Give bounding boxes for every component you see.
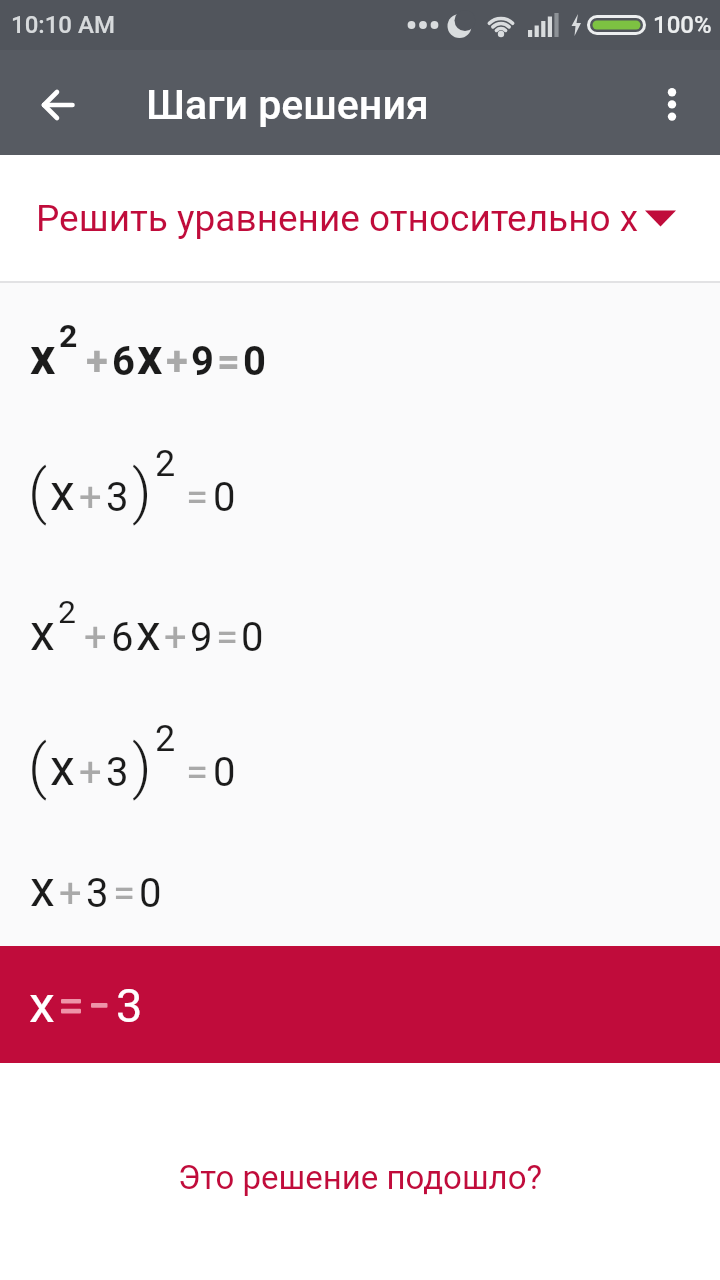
staticText: x [30, 604, 55, 663]
staticText: = [113, 870, 135, 917]
staticText: = [186, 474, 208, 521]
staticText: + [59, 870, 82, 917]
staticText: 9 [191, 338, 214, 385]
staticText: 3 [106, 474, 129, 521]
button[interactable]: Это решение подошло? [170, 1154, 551, 1201]
button[interactable]: x [30, 328, 266, 387]
staticText: + [79, 474, 102, 521]
staticText: x [137, 328, 163, 387]
staticText: 0 [241, 614, 264, 661]
staticText: 3 [116, 978, 143, 1033]
staticText: + [86, 338, 108, 385]
staticText: x [136, 604, 161, 663]
staticText: 0 [139, 870, 162, 917]
staticText: 10:10 AM [11, 11, 115, 39]
button[interactable]: x [30, 860, 162, 919]
staticText: 0 [213, 474, 236, 521]
staticText: 3 [86, 870, 109, 917]
staticText: 2 [58, 593, 76, 631]
staticText: = [216, 614, 238, 661]
button[interactable]: ( [28, 456, 236, 526]
staticText: 6 [112, 338, 135, 385]
button[interactable] [36, 81, 80, 125]
button[interactable]: Решить уравнение относительно x [0, 155, 720, 281]
button[interactable]: ( [28, 731, 236, 801]
staticText: + [79, 749, 102, 796]
staticText: + [84, 614, 107, 661]
button[interactable]: x [30, 604, 264, 663]
staticText: ( [28, 456, 48, 526]
staticText: 9 [190, 614, 213, 661]
staticText: x [29, 974, 55, 1035]
staticText: Шаги решения [146, 81, 429, 129]
staticText: x [50, 739, 75, 798]
staticText: + [164, 614, 187, 661]
staticText: 2 [59, 317, 78, 355]
button[interactable] [652, 75, 692, 131]
staticText: 3 [106, 749, 129, 796]
staticText: x [30, 860, 55, 919]
staticText: + [166, 338, 188, 385]
staticText: 0 [213, 749, 236, 796]
staticText: = [217, 338, 240, 385]
staticText: ) [132, 731, 152, 801]
staticText: 100% [653, 11, 712, 39]
button[interactable]: x [0, 946, 720, 1063]
staticText: ( [28, 731, 48, 801]
staticText: = [186, 749, 208, 796]
staticText: 0 [243, 338, 266, 385]
staticText: 2 [155, 443, 176, 485]
staticText: x [50, 464, 75, 523]
staticText: ) [132, 456, 152, 526]
staticText: 2 [155, 718, 176, 760]
staticText: x [30, 328, 56, 387]
staticText: 6 [111, 614, 134, 661]
staticText: Решить уравнение относительно x [36, 197, 639, 240]
